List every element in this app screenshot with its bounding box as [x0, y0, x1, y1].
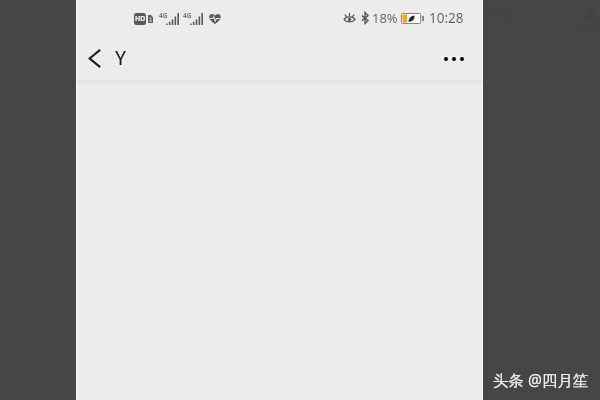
staticText: 18%	[372, 9, 398, 27]
button[interactable]: Back	[76, 37, 112, 79]
staticText: HD	[135, 14, 146, 24]
staticText: 头条 @四月笙	[493, 369, 589, 390]
staticText: 4G	[183, 11, 192, 20]
staticText: Y	[115, 45, 127, 71]
staticText: 4G	[159, 11, 168, 20]
button[interactable]: More options	[435, 44, 473, 74]
staticText: 10:28	[429, 9, 464, 27]
